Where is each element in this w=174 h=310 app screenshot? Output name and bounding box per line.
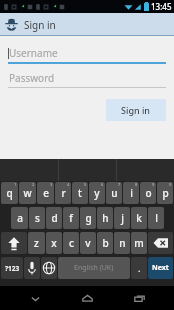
staticText: Next — [152, 263, 169, 273]
button[interactable]: d — [46, 207, 62, 229]
staticText: 3 — [50, 182, 53, 187]
button[interactable]: Recent apps — [122, 286, 156, 310]
button[interactable]: Sign in — [0, 13, 174, 35]
staticText: s — [35, 211, 40, 225]
button[interactable]: f — [63, 207, 79, 229]
button[interactable]: l — [148, 207, 164, 229]
staticText: 6 — [101, 182, 104, 187]
staticText: n — [119, 236, 126, 250]
button[interactable]: 4 — [55, 182, 71, 204]
staticText: 7 — [118, 182, 121, 187]
staticText: t — [78, 186, 82, 200]
staticText: b — [102, 236, 109, 250]
staticText: h — [102, 211, 109, 225]
button[interactable]: j — [114, 207, 130, 229]
staticText: w — [23, 186, 32, 200]
button[interactable]: 1 — [1, 182, 18, 204]
staticText: f — [69, 211, 73, 225]
button[interactable]: n — [114, 232, 130, 254]
staticText: Username — [9, 46, 58, 60]
staticText: l — [155, 211, 158, 225]
staticText: i — [130, 186, 133, 200]
staticText: a — [17, 211, 23, 225]
staticText: c — [69, 236, 74, 250]
staticText: r — [61, 186, 66, 200]
staticText: e — [43, 186, 49, 200]
button[interactable]: c — [63, 232, 79, 254]
staticText: Sign in — [121, 104, 151, 116]
staticText: . — [138, 262, 141, 274]
staticText: u — [111, 186, 118, 200]
button[interactable]: 9 — [140, 182, 156, 204]
button[interactable]: 3 — [37, 182, 54, 204]
button[interactable]: 8 — [123, 182, 139, 204]
button[interactable]: b — [97, 232, 113, 254]
staticText: y — [94, 186, 100, 200]
staticText: o — [145, 186, 152, 200]
staticText: p — [162, 186, 169, 200]
staticText: d — [51, 211, 58, 225]
staticText: q — [6, 186, 13, 200]
button[interactable]: English (UK) — [58, 257, 130, 279]
button[interactable]: z — [28, 232, 45, 254]
button[interactable]: m — [131, 232, 147, 254]
button[interactable]: Change language — [41, 257, 57, 279]
staticText: 2 — [32, 182, 35, 187]
button[interactable]: s — [29, 207, 45, 229]
button[interactable]: ?123 — [1, 257, 23, 279]
staticText: Sign in — [24, 18, 56, 32]
staticText: Password — [9, 71, 55, 85]
button[interactable]: h — [97, 207, 113, 229]
button[interactable]: Password — [8, 71, 166, 88]
button[interactable]: Backspace — [148, 232, 173, 254]
staticText: z — [34, 236, 39, 250]
staticText: v — [85, 236, 91, 250]
button[interactable]: Hide keyboard — [18, 286, 52, 310]
button[interactable]: k — [131, 207, 147, 229]
staticText: m — [134, 236, 144, 250]
staticText: k — [136, 211, 142, 225]
button[interactable]: 7 — [106, 182, 122, 204]
button[interactable]: Sign in — [106, 99, 166, 121]
button[interactable]: x — [46, 232, 62, 254]
staticText: g — [85, 211, 92, 225]
button[interactable]: Home — [70, 286, 104, 310]
staticText: English (UK) — [74, 263, 114, 273]
staticText: 9 — [152, 182, 155, 187]
staticText: ?123 — [5, 264, 20, 273]
button[interactable]: 0 — [157, 182, 173, 204]
staticText: 4 — [67, 182, 70, 187]
button[interactable]: g — [80, 207, 96, 229]
staticText: 1 — [14, 182, 17, 187]
staticText: 13:45 — [151, 1, 172, 12]
staticText: j — [121, 211, 124, 225]
staticText: x — [51, 236, 57, 250]
staticText: 8 — [135, 182, 138, 187]
button[interactable]: 5 — [72, 182, 88, 204]
button[interactable]: Shift — [1, 232, 27, 254]
staticText: 5 — [84, 182, 87, 187]
button[interactable]: 6 — [89, 182, 105, 204]
button[interactable]: . — [131, 257, 147, 279]
button[interactable]: 2 — [19, 182, 36, 204]
button[interactable]: Voice input — [24, 257, 40, 279]
button[interactable]: v — [80, 232, 96, 254]
button[interactable]: a — [11, 207, 28, 229]
staticText: 0 — [169, 182, 172, 187]
button[interactable]: Next — [148, 257, 173, 279]
